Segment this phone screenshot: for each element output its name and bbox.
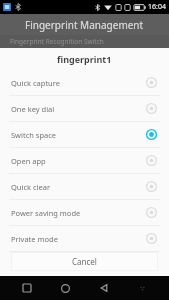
button[interactable]: One key dial — [0, 96, 169, 121]
staticText: Switch space — [11, 130, 145, 140]
button[interactable]: Not selected — [145, 232, 158, 245]
button[interactable]: Quick capture — [0, 70, 169, 95]
button[interactable]: Quick clear — [0, 174, 169, 199]
button[interactable]: Open app — [0, 148, 169, 173]
staticText: 16:04 — [148, 2, 166, 12]
button[interactable]: Not selected — [145, 76, 158, 89]
staticText: Fingerprint Recognition Switch — [10, 37, 104, 46]
staticText: Quick clear — [11, 182, 145, 192]
staticText: Power saving mode — [11, 208, 145, 218]
button[interactable]: Switch space — [0, 122, 169, 147]
staticText: Private mode — [11, 234, 145, 244]
button[interactable]: Power saving mode — [0, 200, 169, 225]
button[interactable]: Not selected — [145, 180, 158, 193]
staticText: One key dial — [11, 104, 145, 114]
button[interactable]: Recents — [15, 276, 39, 300]
button[interactable]: Home — [53, 276, 77, 300]
button[interactable]: Private mode — [0, 226, 169, 251]
button[interactable]: Not selected — [145, 206, 158, 219]
button[interactable]: Menu — [130, 276, 154, 300]
button[interactable]: Not selected — [145, 102, 158, 115]
button[interactable]: Cancel — [11, 252, 158, 271]
staticText: Open app — [11, 156, 145, 166]
staticText: fingerprint1 — [57, 53, 112, 65]
staticText: Fingerprint Management — [25, 18, 144, 32]
staticText: Cancel — [72, 256, 97, 267]
staticText: Quick capture — [11, 78, 145, 88]
button[interactable]: Not selected — [145, 154, 158, 167]
button[interactable]: Selected — [145, 128, 158, 141]
button[interactable]: Back — [92, 276, 116, 300]
